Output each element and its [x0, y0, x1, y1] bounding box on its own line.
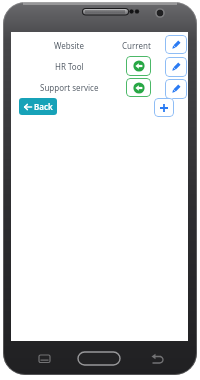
button[interactable]: [126, 56, 151, 76]
staticText: Support service: [40, 82, 99, 93]
button[interactable]: Back: [19, 98, 57, 115]
staticText: Website: [54, 40, 85, 51]
staticText: HR Tool: [55, 61, 84, 72]
button[interactable]: [165, 35, 187, 54]
button[interactable]: [165, 79, 187, 99]
button[interactable]: [154, 98, 174, 117]
button[interactable]: [165, 57, 187, 77]
staticText: Back: [34, 101, 53, 112]
staticText: Current: [122, 40, 151, 51]
button[interactable]: [126, 78, 151, 97]
